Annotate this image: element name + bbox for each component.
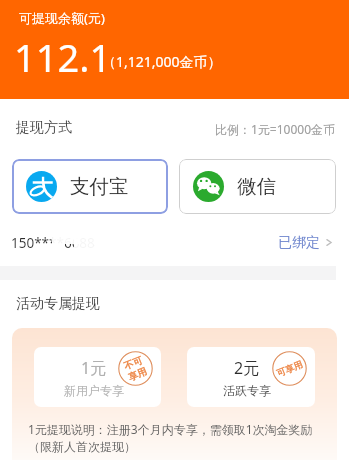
staticText: 1元提现说明：注册3个月内专享，需领取1次淘金奖励 （限新人首次提现） <box>28 421 313 455</box>
staticText: 已绑定 <box>278 234 320 252</box>
staticText: 微信 <box>237 174 276 199</box>
button[interactable]: 支付宝 <box>12 159 168 214</box>
staticText: 可享用 <box>275 358 304 379</box>
staticText: 可提现余额(元) <box>19 9 105 27</box>
button[interactable]: 1元 <box>34 347 161 407</box>
staticText: 150****6688 <box>11 234 95 252</box>
staticText: 享用 <box>127 365 149 384</box>
staticText: 112.1 <box>14 31 112 83</box>
staticText: 比例：1元=10000金币 <box>215 121 336 137</box>
staticText: 1元 <box>81 357 107 379</box>
staticText: 活跃专享 <box>223 383 271 398</box>
staticText: 提现方式 <box>16 119 72 137</box>
staticText: 新用户专享 <box>64 383 124 398</box>
button[interactable]: 150****6688 <box>0 217 349 268</box>
staticText: 支付宝 <box>70 174 129 199</box>
staticText: 活动专属提现 <box>16 295 100 313</box>
staticText: （1,121,000金币） <box>102 52 222 71</box>
staticText: 不可 <box>122 354 144 372</box>
staticText: 2元 <box>234 357 260 379</box>
button[interactable]: 微信 <box>179 159 336 214</box>
button[interactable]: 2元 <box>187 347 315 407</box>
